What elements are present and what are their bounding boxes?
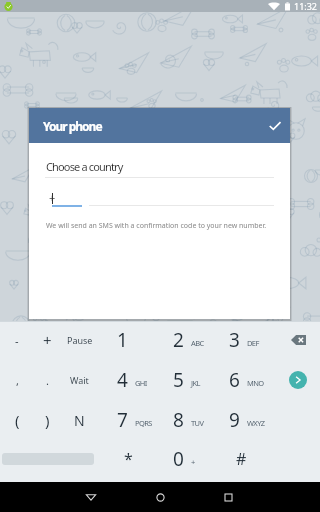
staticText: 0 [173, 446, 184, 472]
staticText: Wait [70, 374, 89, 386]
button[interactable]: Wait [58, 360, 101, 400]
button[interactable]: + [32, 320, 63, 360]
staticText: + [191, 457, 195, 467]
staticText: TUV [191, 418, 204, 428]
button[interactable]: 3 [217, 320, 273, 360]
button[interactable]: ( [2, 400, 32, 440]
button[interactable]: 0 [161, 439, 217, 479]
button[interactable]: * [105, 439, 152, 479]
button[interactable]: , [2, 360, 32, 400]
button[interactable]: Recents [213, 482, 243, 512]
staticText: Choose a country [46, 159, 123, 174]
staticText: 6 [229, 367, 240, 393]
staticText: . [46, 373, 49, 388]
button[interactable]: 8 [161, 400, 217, 440]
staticText: MNO [247, 378, 264, 388]
staticText: We will send an SMS with a confirmation … [46, 221, 267, 231]
staticText: * [124, 448, 133, 470]
staticText: ( [15, 410, 20, 430]
staticText: 3 [229, 327, 240, 353]
staticText: Pause [67, 334, 93, 346]
button[interactable]: 5 [161, 360, 217, 400]
button[interactable]: Pause [58, 320, 101, 360]
button[interactable]: Back [76, 482, 106, 512]
staticText: WXYZ [247, 418, 265, 428]
staticText: - [15, 333, 19, 348]
staticText: DEF [247, 338, 259, 348]
button[interactable]: - [2, 320, 32, 360]
button[interactable]: Home [145, 482, 175, 512]
button[interactable]: Space [0, 439, 100, 479]
button[interactable]: ) [32, 400, 63, 440]
button[interactable]: 9 [217, 400, 273, 440]
staticText: , [16, 373, 19, 388]
button[interactable]: # [217, 439, 266, 479]
staticText: # [236, 448, 247, 470]
staticText: 5 [173, 367, 184, 393]
staticText: 2 [173, 327, 184, 353]
staticText: 8 [173, 407, 184, 433]
button[interactable]: 2 [161, 320, 217, 360]
button[interactable]: Done [261, 112, 289, 140]
staticText: GHI [135, 378, 147, 388]
staticText: ) [45, 410, 50, 430]
button[interactable]: N [58, 400, 101, 440]
staticText: 11:32 [294, 0, 318, 12]
button[interactable]: 7 [105, 400, 161, 440]
staticText: + [49, 190, 56, 205]
staticText: 4 [117, 367, 128, 393]
button[interactable]: Call [277, 360, 319, 400]
staticText: PQRS [135, 418, 152, 428]
button[interactable]: Choose a country [29, 155, 290, 177]
button[interactable]: 6 [217, 360, 273, 400]
staticText: 9 [229, 407, 240, 433]
staticText: JKL [191, 378, 200, 388]
staticText: ABC [191, 338, 204, 348]
staticText: 7 [117, 407, 128, 433]
button[interactable]: Delete [277, 320, 319, 360]
staticText: 1 [117, 327, 128, 353]
staticText: Your phone [43, 118, 102, 134]
staticText: N [74, 411, 85, 430]
staticText: + [43, 330, 52, 350]
button[interactable]: 1 [105, 320, 161, 360]
button[interactable]: 4 [105, 360, 161, 400]
button[interactable]: . [32, 360, 63, 400]
